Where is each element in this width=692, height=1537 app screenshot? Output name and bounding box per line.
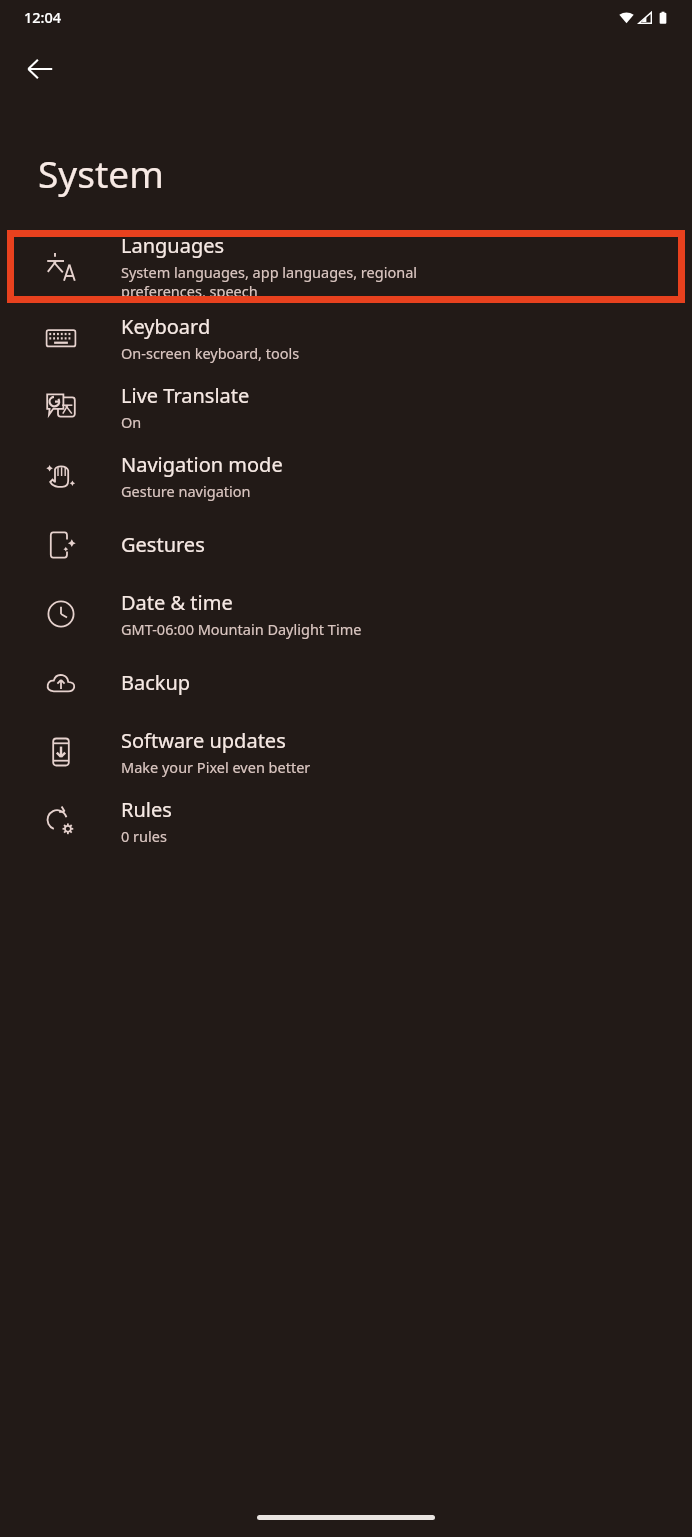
button[interactable]: Keyboard bbox=[0, 303, 692, 372]
staticText: Live Translate bbox=[121, 382, 250, 409]
button[interactable]: Rules bbox=[0, 786, 692, 855]
button[interactable]: Live Translate bbox=[0, 372, 692, 441]
staticText: Make your Pixel even better bbox=[121, 757, 311, 777]
staticText: 0 rules bbox=[121, 826, 167, 846]
button[interactable]: Languages bbox=[0, 230, 692, 303]
staticText: System languages, app languages, regiona… bbox=[121, 262, 418, 301]
staticText: Keyboard bbox=[121, 313, 211, 340]
staticText: Backup bbox=[121, 669, 191, 696]
button[interactable]: Gestures bbox=[0, 510, 692, 579]
staticText: System bbox=[38, 148, 164, 198]
button[interactable]: Back bbox=[14, 43, 66, 95]
staticText: Navigation mode bbox=[121, 451, 283, 478]
staticText: Date & time bbox=[121, 589, 233, 616]
staticText: 12:04 bbox=[24, 7, 62, 27]
button[interactable]: Navigation mode bbox=[0, 441, 692, 510]
staticText: Gestures bbox=[121, 531, 205, 558]
staticText: Languages bbox=[121, 232, 225, 259]
staticText: On bbox=[121, 412, 142, 432]
staticText: On-screen keyboard, tools bbox=[121, 343, 300, 363]
button[interactable]: Date & time bbox=[0, 579, 692, 648]
staticText: Rules bbox=[121, 796, 172, 823]
staticText: Gesture navigation bbox=[121, 481, 251, 501]
staticText: Software updates bbox=[121, 727, 286, 754]
button[interactable]: Software updates bbox=[0, 717, 692, 786]
staticText: GMT-06:00 Mountain Daylight Time bbox=[121, 619, 362, 639]
button[interactable]: Backup bbox=[0, 648, 692, 717]
